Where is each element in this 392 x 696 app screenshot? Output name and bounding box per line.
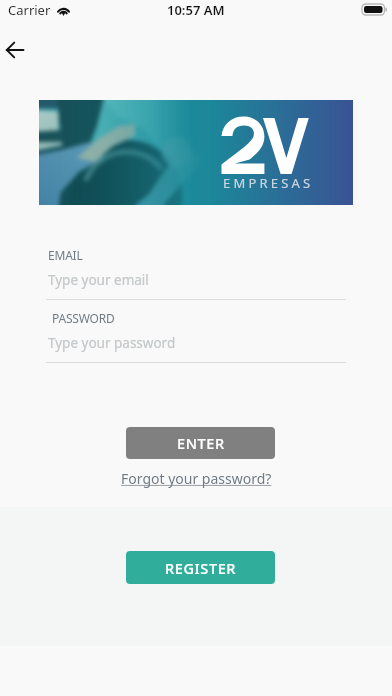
staticText: Type your email xyxy=(48,271,149,289)
staticText: 10:57 AM xyxy=(167,1,225,19)
staticText: EMAIL xyxy=(48,247,83,263)
staticText: REGISTER xyxy=(165,558,237,578)
staticText: PASSWORD xyxy=(52,310,115,326)
button[interactable]: Back xyxy=(0,30,36,70)
staticText: Forgot your password? xyxy=(121,469,272,488)
button[interactable]: ENTER xyxy=(126,427,275,459)
staticText: EMPRESAS xyxy=(223,174,314,192)
staticText: ENTER xyxy=(177,433,225,453)
staticText: Type your password xyxy=(48,334,176,352)
button[interactable]: Forgot your password? xyxy=(121,469,272,488)
staticText: Carrier xyxy=(8,1,51,19)
button[interactable]: REGISTER xyxy=(126,551,275,584)
